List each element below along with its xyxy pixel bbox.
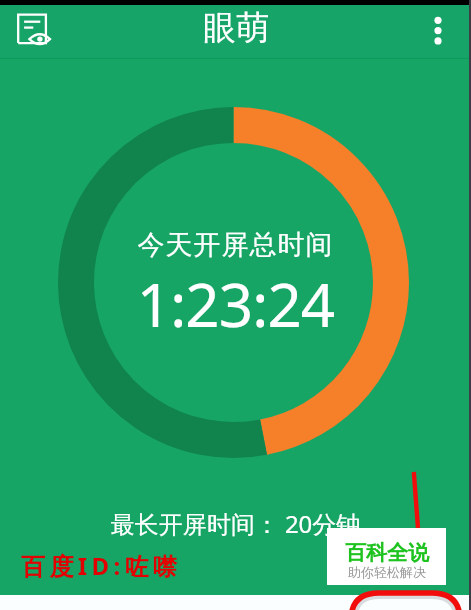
staticText: 今天开屏总时间 <box>0 228 471 262</box>
staticText: 1:23:24 <box>0 263 471 345</box>
staticText: 眼萌 <box>203 7 269 49</box>
staticText: 最长开屏时间： 20分钟 <box>0 507 471 540</box>
staticText: 百科全说 <box>345 540 429 566</box>
staticText: 助你轻松解决 <box>348 564 426 580</box>
staticText: 百度ID:咗噤 <box>21 549 182 582</box>
button[interactable]: More options <box>416 10 460 54</box>
button[interactable]: Usage records <box>12 8 60 56</box>
